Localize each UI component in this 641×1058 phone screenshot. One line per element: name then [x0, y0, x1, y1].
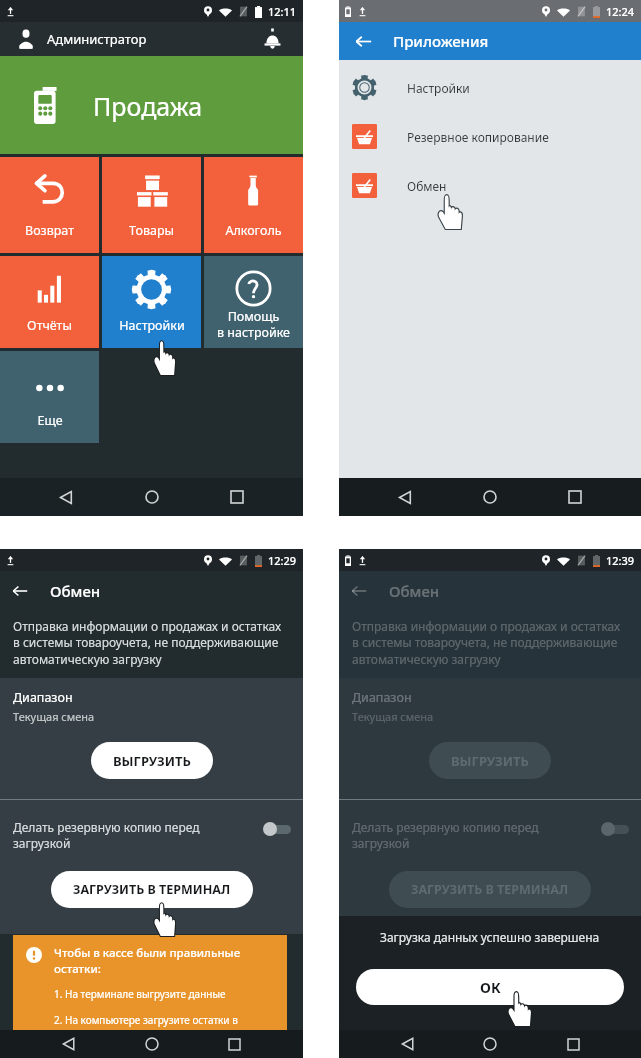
button[interactable]: Recents	[218, 478, 256, 516]
button[interactable]: Резервное копирование	[339, 112, 641, 161]
staticText: Обмен	[407, 178, 447, 194]
staticText: 12:29	[268, 553, 297, 568]
staticText: Обмен	[389, 581, 440, 601]
button[interactable]: Возврат	[0, 157, 99, 253]
staticText: ЗАГРУЗИТЬ В ТЕРМИНАЛ	[411, 881, 569, 898]
staticText: Делать резервную копию перед загрузкой	[352, 819, 595, 851]
button[interactable]: Back	[6, 577, 34, 605]
button[interactable]: ЗАГРУЗИТЬ В ТЕРМИНАЛ	[389, 871, 591, 908]
staticText: ЗАГРУЗИТЬ В ТЕРМИНАЛ	[73, 881, 231, 898]
staticText: Обмен	[50, 581, 101, 601]
staticText: Текущая смена	[13, 709, 95, 724]
button[interactable]: Администратор	[19, 29, 147, 49]
staticText: Диапазон	[352, 689, 412, 706]
staticText: Загрузка данных успешно завершена	[380, 929, 600, 945]
staticText: Отправка информации о продажах и остатка…	[352, 618, 621, 668]
staticText: Еще	[37, 412, 63, 429]
button[interactable]: ВЫГРУЗИТЬ	[429, 742, 551, 779]
button[interactable]: ВЫГРУЗИТЬ	[91, 742, 213, 779]
button[interactable]: Back	[386, 478, 424, 516]
staticText: Текущая смена	[352, 709, 434, 724]
staticText: Диапазон	[13, 689, 73, 706]
button[interactable]: Back	[47, 478, 85, 516]
staticText: 12:11	[268, 4, 297, 19]
button[interactable]: Notifications	[258, 25, 286, 53]
button[interactable]: Помощь в настройке	[204, 256, 303, 348]
button[interactable]: ОК	[356, 969, 624, 1005]
staticText: Алкоголь	[225, 222, 282, 239]
staticText: Возврат	[25, 222, 74, 239]
button[interactable]: Продажа	[0, 56, 303, 154]
button[interactable]: Чтобы в кассе были правильные остатки:	[13, 935, 287, 1030]
button[interactable]: Backup toggle	[601, 821, 629, 837]
staticText: Резервное копирование	[407, 129, 549, 145]
button[interactable]: Back	[348, 26, 378, 56]
staticText: Делать резервную копию перед загрузкой	[13, 819, 257, 851]
staticText: ВЫГРУЗИТЬ	[113, 752, 191, 770]
staticText: Отправка информации о продажах и остатка…	[13, 618, 282, 668]
button[interactable]: Back	[345, 577, 373, 605]
button[interactable]: Home	[138, 1030, 166, 1058]
staticText: Настройки	[119, 317, 185, 334]
staticText: ОК	[480, 978, 501, 997]
button[interactable]: Home	[476, 1030, 504, 1058]
staticText: ВЫГРУЗИТЬ	[451, 752, 529, 770]
button[interactable]: Еще	[0, 351, 99, 443]
staticText: 1. На терминале выгрузите данные	[54, 987, 226, 1001]
staticText: Чтобы в кассе были правильные остатки:	[54, 945, 241, 976]
staticText: 12:39	[606, 553, 635, 568]
button[interactable]: Настройки	[102, 256, 201, 348]
button[interactable]: Home	[471, 478, 509, 516]
staticText: Продажа	[93, 89, 203, 123]
button[interactable]: Обмен	[339, 161, 641, 210]
button[interactable]: Товары	[102, 157, 201, 253]
button[interactable]: Back	[394, 1030, 422, 1058]
staticText: Администратор	[47, 30, 147, 48]
button[interactable]: Back	[55, 1030, 83, 1058]
button[interactable]: Настройки	[339, 63, 641, 112]
button[interactable]: Recents	[220, 1030, 248, 1058]
button[interactable]: Backup toggle	[263, 821, 291, 837]
staticText: Отчёты	[27, 317, 72, 334]
button[interactable]: Алкоголь	[204, 157, 303, 253]
staticText: 2. На компьютере загрузите остатки в	[54, 1013, 238, 1027]
button[interactable]: Отчёты	[0, 256, 99, 348]
button[interactable]: Home	[133, 478, 171, 516]
staticText: 12:24	[606, 4, 635, 19]
staticText: Приложения	[393, 31, 489, 51]
staticText: Помощь в настройке	[217, 308, 290, 340]
button[interactable]: Recents	[556, 478, 594, 516]
button[interactable]: Recents	[559, 1030, 587, 1058]
button[interactable]: ЗАГРУЗИТЬ В ТЕРМИНАЛ	[51, 871, 253, 908]
staticText: Товары	[129, 222, 174, 239]
staticText: Настройки	[407, 80, 470, 96]
